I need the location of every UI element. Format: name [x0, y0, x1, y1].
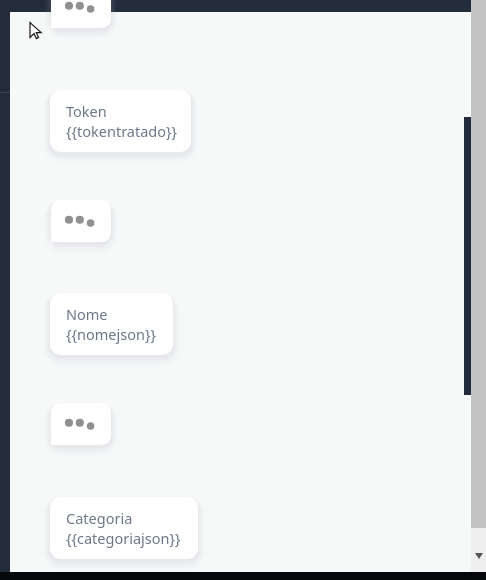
staticText: Categoria	[66, 508, 133, 528]
staticText: Nome	[66, 304, 108, 324]
button[interactable]: Typing indicator	[51, 0, 111, 28]
staticText: Token	[66, 101, 107, 121]
button[interactable]: Typing indicator	[51, 403, 111, 445]
staticText: {{tokentratado}}	[66, 121, 178, 141]
button[interactable]: Categoria	[50, 497, 198, 559]
button[interactable]: Nome	[50, 293, 173, 355]
staticText: {{categoriajson}}	[66, 528, 181, 548]
button[interactable]: Window scrollbar	[471, 0, 486, 572]
button[interactable]	[0, 0, 471, 12]
button[interactable]: Typing indicator	[51, 200, 111, 242]
staticText: {{nomejson}}	[66, 324, 156, 344]
button[interactable]: Token	[50, 90, 191, 152]
